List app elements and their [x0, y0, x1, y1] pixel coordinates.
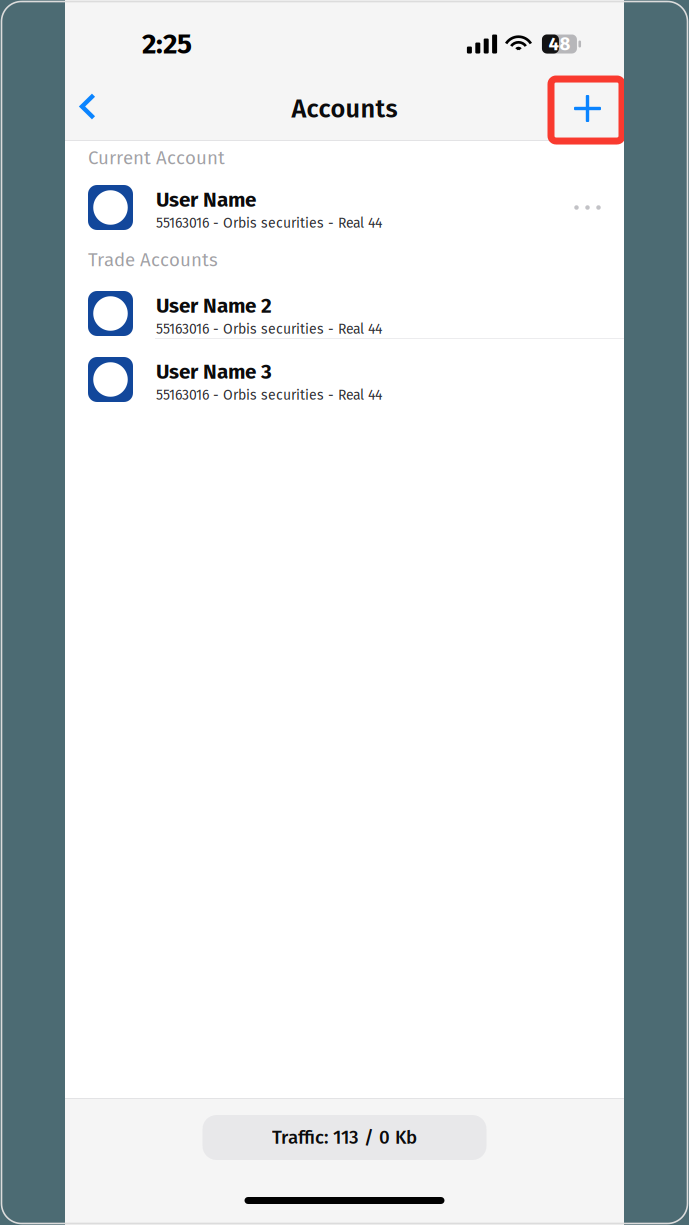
button[interactable]: User Name: [65, 175, 624, 240]
button[interactable]: User Name 2: [65, 280, 624, 347]
staticText: User Name 2: [156, 293, 272, 318]
staticText: User Name 3: [156, 359, 272, 384]
button[interactable]: Back: [66, 72, 110, 141]
staticText: 55163016 - Orbis securities - Real 44: [156, 321, 382, 338]
button[interactable]: Traffic: 113 / 0 Kb: [202, 1115, 486, 1160]
staticText: Trade Accounts: [88, 249, 218, 271]
button[interactable]: User Name 3: [65, 347, 624, 412]
staticText: 48: [548, 33, 570, 55]
staticText: 55163016 - Orbis securities - Real 44: [156, 387, 382, 404]
staticText: Accounts: [291, 94, 397, 124]
staticText: Current Account: [88, 147, 225, 169]
staticText: Traffic: 113 / 0 Kb: [272, 1126, 417, 1149]
staticText: 55163016 - Orbis securities - Real 44: [156, 215, 382, 232]
button[interactable]: Add account: [549, 74, 626, 143]
staticText: User Name: [156, 187, 256, 212]
staticText: 2:25: [142, 27, 192, 61]
